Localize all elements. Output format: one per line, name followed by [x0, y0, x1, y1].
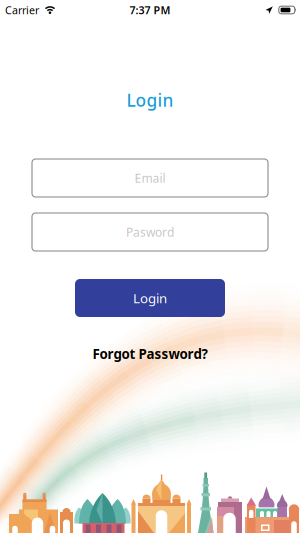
staticText: Pasword [126, 224, 174, 240]
staticText: Forgot Password? [92, 345, 207, 363]
staticText: 7:37 PM [129, 3, 170, 17]
staticText: Carrier [5, 3, 39, 17]
staticText: Login [126, 88, 173, 111]
staticText: Login [133, 289, 167, 307]
staticText: Email [134, 170, 165, 186]
